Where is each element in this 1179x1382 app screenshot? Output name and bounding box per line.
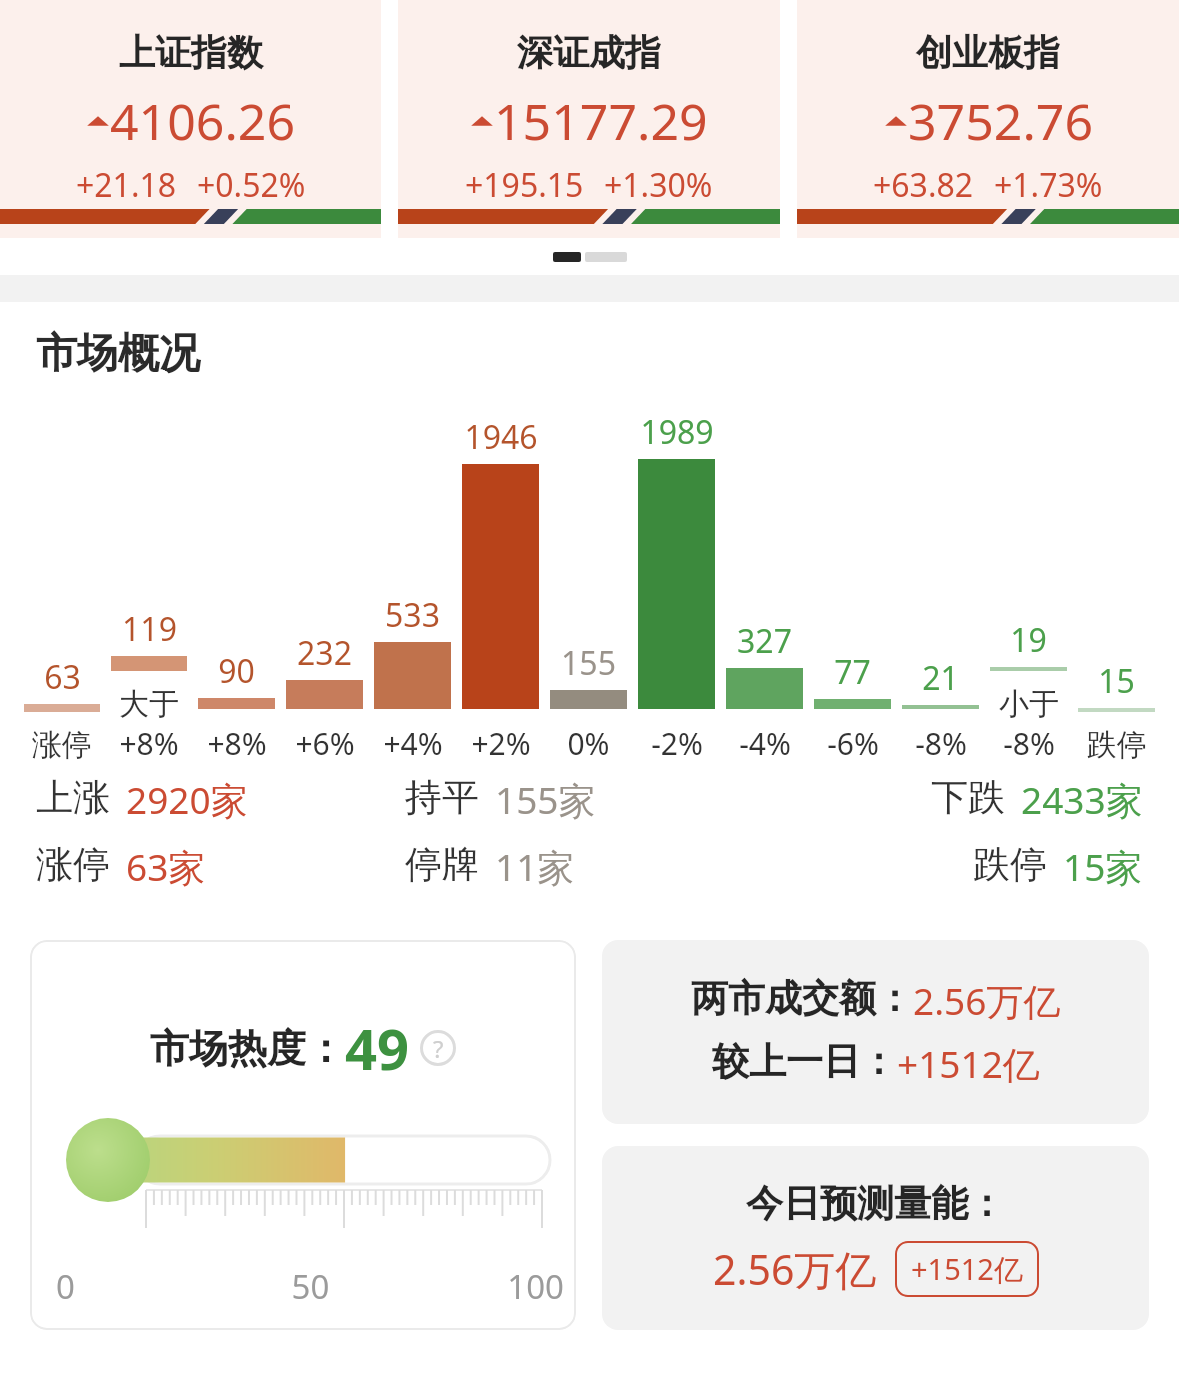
- staticText: +4%: [383, 723, 443, 764]
- staticText: 上证指数: [119, 30, 263, 75]
- staticText: +1.30%: [604, 163, 713, 207]
- staticText: 涨停: [36, 841, 110, 888]
- staticText: 0: [56, 1264, 226, 1309]
- staticText: 327: [737, 619, 792, 663]
- staticText: 跌停: [1087, 726, 1147, 764]
- staticText: 两市成交额：: [691, 975, 913, 1022]
- staticText: 2920家: [126, 774, 248, 825]
- staticText: -8%: [1003, 723, 1055, 764]
- staticText: 大于: [119, 685, 179, 723]
- staticText: 创业板指: [916, 30, 1060, 75]
- button[interactable]: 市场热度：: [30, 940, 576, 1330]
- staticText: +195.15: [465, 163, 584, 207]
- staticText: 小于: [999, 685, 1059, 723]
- staticText: 市场概况: [36, 328, 200, 380]
- staticText: +8%: [207, 723, 267, 764]
- staticText: 较上一日：: [712, 1038, 897, 1085]
- staticText: 下跌: [931, 774, 1005, 821]
- staticText: 2.56万亿: [713, 1241, 877, 1297]
- button[interactable]: 帮助: [420, 1030, 456, 1066]
- staticText: -6%: [827, 723, 879, 764]
- staticText: 15家: [1063, 841, 1143, 892]
- staticText: 232: [297, 631, 352, 675]
- staticText: 2433家: [1021, 774, 1143, 825]
- staticText: -2%: [651, 723, 703, 764]
- staticText: 50: [226, 1264, 395, 1309]
- staticText: 19: [1010, 618, 1047, 662]
- staticText: -8%: [915, 723, 967, 764]
- staticText: 155: [561, 641, 616, 685]
- staticText: +0.52%: [197, 163, 306, 207]
- staticText: 深证成指: [517, 30, 661, 75]
- staticText: +1.73%: [994, 163, 1103, 207]
- staticText: 77: [834, 650, 871, 694]
- button[interactable]: 创业板指: [797, 0, 1179, 238]
- staticText: 100: [395, 1264, 564, 1309]
- staticText: 119: [122, 607, 177, 651]
- staticText: 49: [345, 1010, 410, 1086]
- staticText: 停牌: [405, 841, 479, 888]
- staticText: 63家: [126, 841, 206, 892]
- staticText: 155家: [495, 774, 596, 825]
- staticText: 11家: [495, 841, 575, 892]
- staticText: ?: [433, 1032, 444, 1065]
- button[interactable]: 今日预测量能：: [602, 1146, 1149, 1330]
- staticText: +6%: [295, 723, 355, 764]
- staticText: 上涨: [36, 774, 110, 821]
- staticText: +63.82: [873, 163, 974, 207]
- staticText: 63: [44, 655, 81, 699]
- staticText: +1512亿: [911, 1249, 1023, 1289]
- staticText: -4%: [739, 723, 791, 764]
- staticText: +2%: [471, 723, 531, 764]
- staticText: 今日预测量能：: [746, 1180, 1005, 1227]
- staticText: 3752.76: [908, 87, 1093, 155]
- staticText: 市场热度：: [150, 1024, 345, 1073]
- staticText: +1512亿: [897, 1038, 1040, 1089]
- staticText: 90: [218, 649, 255, 693]
- staticText: 15: [1098, 659, 1135, 703]
- staticText: 持平: [405, 774, 479, 821]
- staticText: 涨停: [32, 726, 92, 764]
- staticText: +21.18: [76, 163, 177, 207]
- staticText: 1989: [640, 410, 714, 454]
- staticText: 2.56万亿: [913, 975, 1061, 1026]
- staticText: 4106.26: [110, 87, 295, 155]
- staticText: 跌停: [973, 841, 1047, 888]
- staticText: 0%: [567, 723, 610, 764]
- staticText: +8%: [119, 723, 179, 764]
- staticText: 21: [922, 656, 959, 700]
- button[interactable]: 两市成交额：: [602, 940, 1149, 1124]
- button[interactable]: 上证指数: [0, 0, 381, 238]
- staticText: 15177.29: [494, 87, 708, 155]
- staticText: 1946: [464, 415, 538, 459]
- button[interactable]: 深证成指: [398, 0, 780, 238]
- staticText: 533: [385, 593, 440, 637]
